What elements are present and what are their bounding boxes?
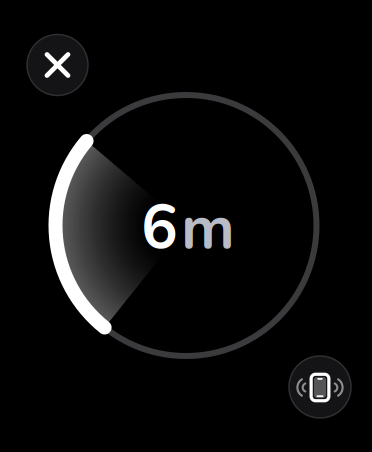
staticText: 6 [141, 186, 178, 270]
button[interactable]: Play sound on iPhone [289, 356, 351, 418]
button[interactable]: Close [27, 34, 88, 95]
staticText: m [181, 186, 235, 270]
